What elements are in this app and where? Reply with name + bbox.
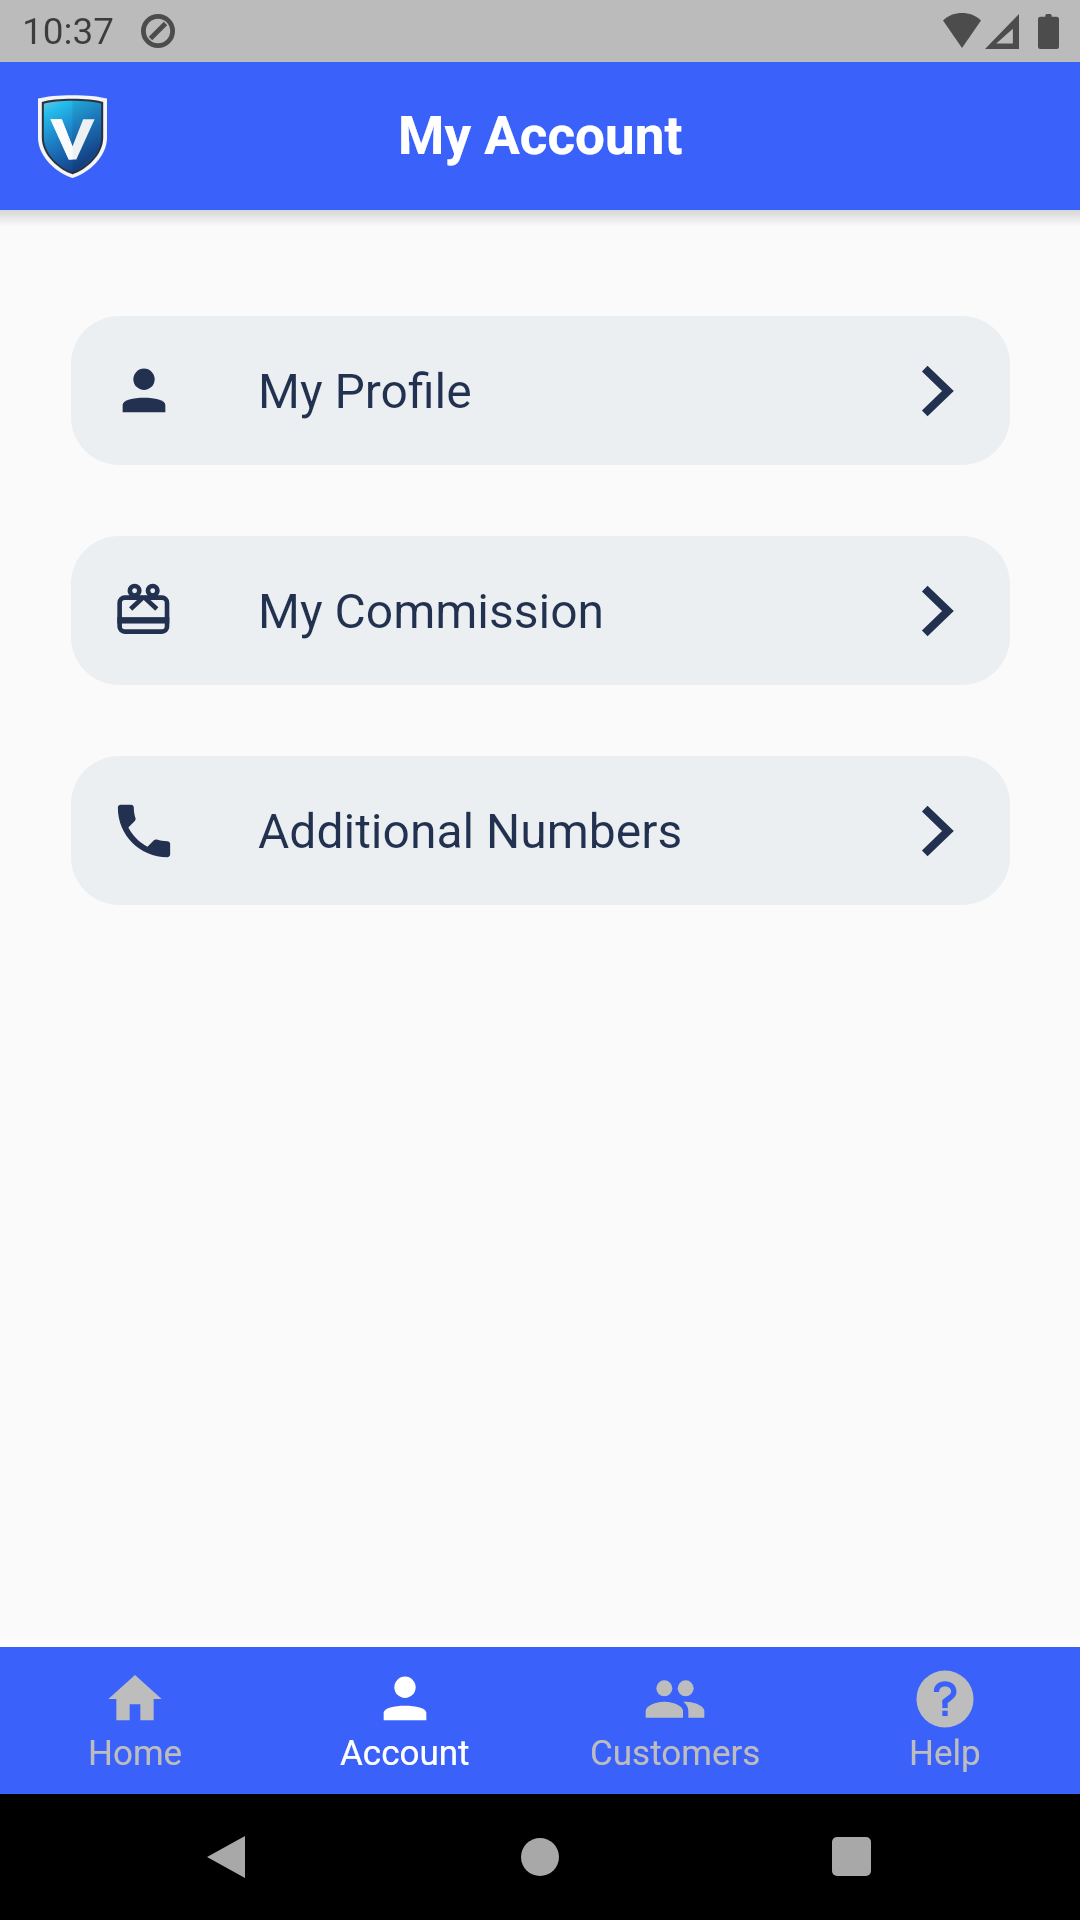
button[interactable]: Customers [540, 1647, 810, 1794]
button[interactable]: My Profile [71, 316, 1010, 465]
button[interactable]: Account [270, 1647, 540, 1794]
staticText: My Account [398, 105, 683, 167]
button[interactable]: Recent apps [813, 1818, 889, 1894]
staticText: Customers [590, 1733, 761, 1774]
staticText: My Profile [258, 363, 472, 419]
staticText: Home [88, 1733, 183, 1774]
staticText: Help [909, 1733, 981, 1774]
button[interactable]: My Commission [71, 536, 1010, 685]
button[interactable]: Additional Numbers [71, 756, 1010, 905]
staticText: Account [340, 1733, 470, 1774]
button[interactable]: Help [810, 1647, 1080, 1794]
staticText: My Commission [258, 583, 605, 639]
staticText: Additional Numbers [258, 803, 683, 859]
button[interactable]: Back [188, 1836, 264, 1878]
staticText: 10:37 [22, 10, 115, 53]
button[interactable]: Home [502, 1819, 578, 1895]
button[interactable]: Home [0, 1647, 270, 1794]
button[interactable]: App logo [38, 94, 107, 178]
